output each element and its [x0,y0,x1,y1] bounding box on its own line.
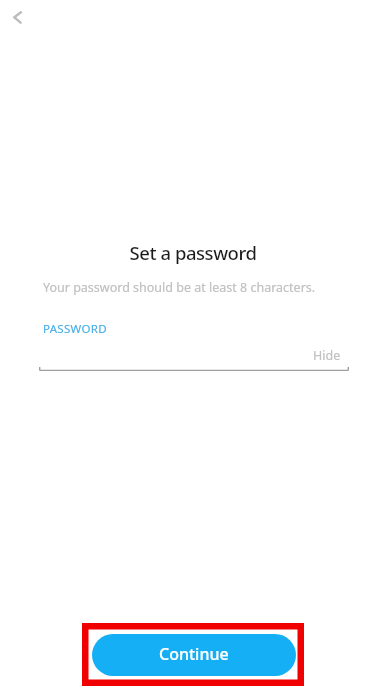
staticText: Set a password [0,240,386,265]
button[interactable]: Password field [39,340,309,370]
staticText: Your password should be at least 8 chara… [43,279,316,296]
button[interactable]: Hide [307,342,345,366]
staticText: Hide [313,347,341,364]
button[interactable]: Navigate back [2,2,36,36]
button[interactable]: Continue [92,634,296,676]
staticText: PASSWORD [43,321,107,337]
staticText: Continue [159,643,229,665]
